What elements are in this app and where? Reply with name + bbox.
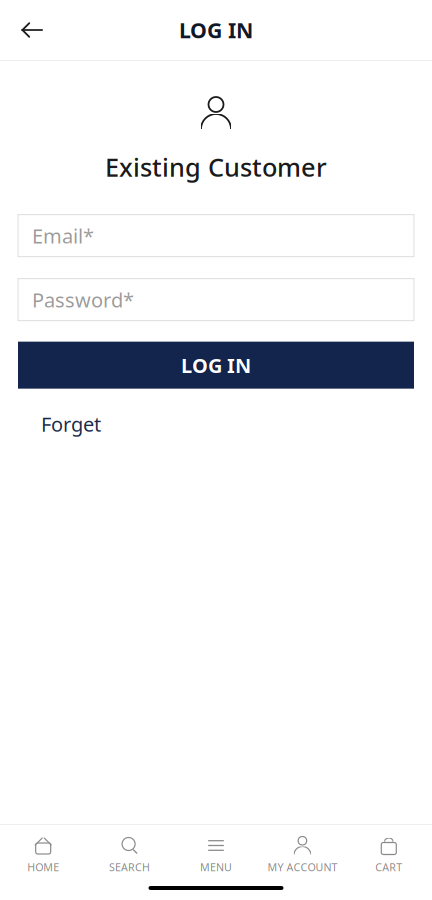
staticText: LOG IN (179, 16, 253, 44)
staticText: MY ACCOUNT (267, 860, 337, 874)
staticText: SEARCH (109, 860, 150, 874)
staticText: MENU (200, 860, 232, 874)
button[interactable]: SEARCH (86, 836, 173, 874)
button[interactable]: Back (10, 8, 54, 52)
button[interactable]: HOME (0, 836, 86, 874)
button[interactable]: MY ACCOUNT (259, 836, 346, 874)
staticText: HOME (27, 860, 59, 874)
staticText: CART (375, 860, 402, 874)
button[interactable]: CART (346, 836, 432, 874)
staticText: Existing Customer (105, 150, 327, 184)
button[interactable]: Forget Password? (18, 411, 164, 466)
button[interactable]: MENU (173, 836, 259, 874)
staticText: LOG IN (181, 352, 251, 378)
staticText: Forget Password? (41, 411, 141, 464)
button[interactable]: LOG IN (18, 342, 414, 389)
staticText: Email* (32, 222, 94, 249)
staticText: Password* (32, 286, 134, 313)
